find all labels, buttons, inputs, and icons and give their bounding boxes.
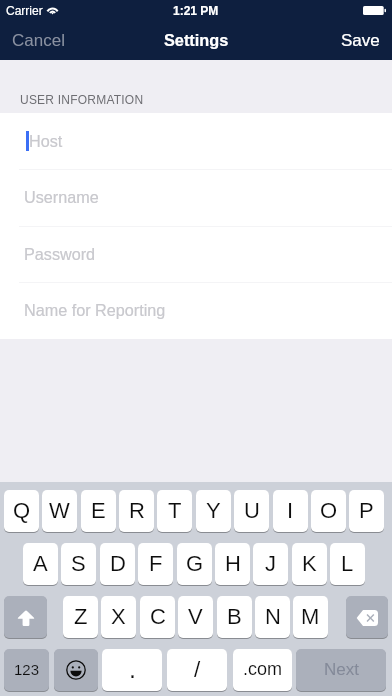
button[interactable]: V	[178, 596, 213, 638]
staticText: Z	[74, 604, 88, 629]
button[interactable]: Z	[63, 596, 98, 638]
staticText: V	[188, 604, 203, 629]
button[interactable]: Password	[0, 226, 392, 282]
button[interactable]: .	[102, 649, 162, 691]
button[interactable]: Emoji	[54, 649, 98, 691]
staticText: Y	[206, 498, 221, 523]
staticText: G	[186, 551, 204, 576]
button[interactable]: R	[119, 490, 154, 532]
staticText: O	[320, 498, 338, 523]
button[interactable]: Save	[312, 20, 392, 60]
staticText: J	[265, 551, 276, 576]
button[interactable]: Host	[0, 113, 392, 169]
staticText: Password	[24, 245, 96, 263]
staticText: Q	[13, 498, 31, 523]
button[interactable]: X	[101, 596, 136, 638]
button[interactable]: A	[23, 543, 58, 585]
button[interactable]: Name for Reporting	[0, 282, 392, 338]
button[interactable]: J	[253, 543, 288, 585]
button[interactable]: Y	[196, 490, 231, 532]
staticText: I	[287, 498, 294, 523]
staticText: Next	[324, 660, 359, 679]
staticText: H	[225, 551, 241, 576]
staticText: Carrier	[6, 4, 43, 17]
button[interactable]: N	[255, 596, 290, 638]
button[interactable]: Cancel	[0, 20, 90, 60]
button[interactable]: M	[293, 596, 328, 638]
staticText: D	[110, 551, 126, 576]
staticText: .	[129, 655, 136, 683]
staticText: 1:21 PM	[173, 4, 219, 17]
button[interactable]: K	[292, 543, 327, 585]
button[interactable]: H	[215, 543, 250, 585]
staticText: S	[71, 551, 86, 576]
staticText: /	[194, 657, 201, 682]
button[interactable]: Next	[296, 649, 386, 691]
staticText: B	[227, 604, 242, 629]
staticText: Save	[341, 31, 380, 50]
button[interactable]: D	[100, 543, 135, 585]
staticText: P	[359, 498, 374, 523]
staticText: Cancel	[12, 31, 65, 50]
staticText: Settings	[164, 31, 229, 49]
staticText: Username	[24, 188, 99, 206]
staticText: Name for Reporting	[24, 301, 166, 319]
button[interactable]: Backspace	[346, 596, 388, 638]
staticText: 123	[14, 661, 40, 678]
button[interactable]: E	[81, 490, 116, 532]
button[interactable]: /	[167, 649, 227, 691]
staticText: A	[33, 551, 48, 576]
button[interactable]: G	[177, 543, 212, 585]
staticText: USER INFORMATION	[20, 93, 144, 106]
staticText: M	[301, 604, 320, 629]
button[interactable]: Username	[0, 169, 392, 225]
staticText: W	[49, 498, 70, 523]
button[interactable]: I	[273, 490, 308, 532]
button[interactable]: 123	[4, 649, 49, 691]
button[interactable]: Shift	[4, 596, 47, 638]
staticText: N	[265, 604, 281, 629]
button[interactable]: U	[234, 490, 269, 532]
button[interactable]: S	[61, 543, 96, 585]
staticText: .com	[243, 659, 283, 679]
button[interactable]: L	[330, 543, 365, 585]
staticText: K	[302, 551, 317, 576]
button[interactable]: C	[140, 596, 175, 638]
staticText: U	[244, 498, 260, 523]
button[interactable]: B	[217, 596, 252, 638]
staticText: T	[168, 498, 182, 523]
button[interactable]: Q	[4, 490, 39, 532]
button[interactable]: F	[138, 543, 173, 585]
staticText: X	[111, 604, 126, 629]
button[interactable]: .com	[233, 649, 292, 691]
button[interactable]: O	[311, 490, 346, 532]
button[interactable]: T	[157, 490, 192, 532]
staticText: C	[150, 604, 166, 629]
button[interactable]: W	[42, 490, 77, 532]
staticText: Host	[29, 132, 63, 150]
staticText: L	[341, 551, 354, 576]
staticText: E	[91, 498, 106, 523]
button[interactable]: P	[349, 490, 384, 532]
staticText: R	[129, 498, 145, 523]
staticText: F	[149, 551, 163, 576]
